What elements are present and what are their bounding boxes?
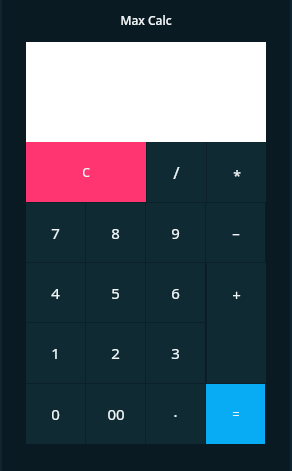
staticText: 4 xyxy=(51,283,60,303)
staticText: 1 xyxy=(51,343,60,363)
staticText: + xyxy=(232,285,241,305)
button[interactable]: Divide xyxy=(147,142,206,202)
staticText: 3 xyxy=(171,343,180,363)
button[interactable]: 8 xyxy=(86,203,145,262)
button[interactable]: 9 xyxy=(146,203,205,262)
staticText: . xyxy=(173,401,178,421)
button[interactable]: 7 xyxy=(26,203,85,262)
button[interactable]: Decimal point xyxy=(146,384,205,444)
button[interactable]: 1 xyxy=(26,323,85,383)
staticText: – xyxy=(232,223,240,243)
staticText: = xyxy=(232,405,240,423)
button[interactable]: 6 xyxy=(146,263,205,322)
staticText: 5 xyxy=(111,283,120,303)
staticText: 6 xyxy=(171,283,180,303)
staticText: 2 xyxy=(111,343,120,363)
staticText: / xyxy=(173,161,180,184)
button[interactable]: Minus xyxy=(206,203,265,262)
button[interactable]: 00 xyxy=(86,384,145,444)
staticText: 0 xyxy=(51,404,60,424)
button[interactable]: Clear xyxy=(26,142,146,202)
button[interactable]: 5 xyxy=(86,263,145,322)
staticText: Max Calc xyxy=(120,12,172,28)
button[interactable]: Equals xyxy=(206,384,265,444)
staticText: C xyxy=(82,164,90,180)
staticText: 00 xyxy=(107,404,125,424)
staticText: 7 xyxy=(51,223,60,243)
staticText: 9 xyxy=(171,223,180,243)
button[interactable]: 3 xyxy=(146,323,205,383)
button[interactable]: Multiply xyxy=(207,142,266,202)
staticText: * xyxy=(233,166,241,185)
button[interactable]: 4 xyxy=(26,263,85,322)
button[interactable]: 2 xyxy=(86,323,145,383)
button[interactable]: Plus xyxy=(207,263,266,383)
button[interactable]: 0 xyxy=(26,384,85,444)
staticText: 8 xyxy=(111,223,120,243)
